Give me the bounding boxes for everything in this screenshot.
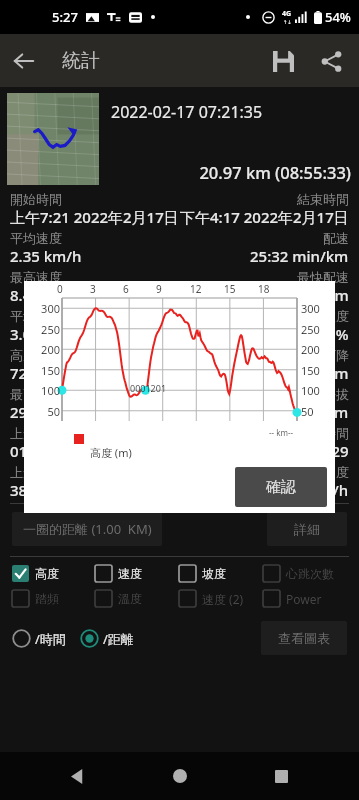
staticText: 6 bbox=[123, 282, 129, 296]
button[interactable]: 溫度 bbox=[95, 590, 179, 607]
staticText: -- km-- bbox=[269, 427, 294, 438]
staticText: 71.00 m bbox=[292, 363, 349, 383]
button[interactable]: 心跳次數 bbox=[263, 565, 347, 582]
button[interactable]: Back bbox=[54, 752, 102, 800]
staticText: Power bbox=[286, 591, 322, 607]
button[interactable]: 踏頻 bbox=[12, 590, 95, 607]
staticText: 下降速度 bbox=[297, 464, 349, 480]
staticText: 最快配速 bbox=[297, 269, 349, 285]
staticText: 配速 bbox=[323, 230, 349, 246]
staticText: 2022-02-17 07:21:35 bbox=[111, 101, 263, 123]
staticText: 100 bbox=[30, 383, 60, 398]
staticText: 300 bbox=[30, 301, 60, 316]
button[interactable]: 查看圖表 bbox=[261, 621, 347, 655]
staticText: 速度 bbox=[118, 566, 142, 581]
staticText: 2.35 km/h bbox=[10, 246, 82, 266]
staticText: 250 bbox=[30, 322, 60, 337]
button[interactable]: Recents bbox=[257, 752, 305, 800]
staticText: 0 bbox=[57, 282, 63, 296]
staticText: 最高速度 bbox=[10, 269, 62, 285]
staticText: 最高海拔 bbox=[10, 386, 62, 402]
button[interactable]: 高度 bbox=[12, 565, 95, 582]
staticText: 3 bbox=[90, 282, 96, 296]
staticText: 高度 (m) bbox=[90, 445, 132, 460]
staticText: 382.09 m/h bbox=[10, 480, 91, 500]
staticText: 結束時間 bbox=[297, 191, 349, 207]
staticText: 20.97 km (08:55:33) bbox=[111, 161, 351, 183]
staticText: 統計 bbox=[62, 49, 100, 73]
staticText: 溫度 bbox=[118, 591, 142, 606]
staticText: 299 m bbox=[10, 402, 54, 422]
staticText: /距離 bbox=[103, 630, 134, 648]
staticText: 4G bbox=[282, 9, 292, 19]
staticText: 150 bbox=[30, 363, 60, 378]
staticText: 上午7:21 2022年2月17日 bbox=[10, 207, 179, 227]
staticText: ↑↓ bbox=[283, 19, 292, 25]
staticText: 確認 bbox=[266, 478, 296, 497]
staticText: 100 bbox=[301, 383, 331, 398]
button[interactable]: /時間 bbox=[12, 629, 66, 648]
staticText: 01:23:29 bbox=[289, 441, 349, 461]
button[interactable]: Home bbox=[156, 752, 204, 800]
staticText: 50 bbox=[30, 404, 60, 419]
staticText: 334.87 m/h bbox=[268, 480, 349, 500]
button[interactable]: 詳細 bbox=[267, 512, 347, 546]
staticText: 查看圖表 bbox=[278, 630, 330, 646]
staticText: 坡度 bbox=[202, 566, 226, 581]
button[interactable]: 速度 (2) bbox=[179, 590, 263, 607]
staticText: 250 bbox=[301, 322, 331, 337]
staticText: 54% bbox=[325, 8, 351, 26]
staticText: 平均海拔 bbox=[10, 308, 62, 324]
staticText: 01:18:29 bbox=[10, 441, 70, 461]
staticText: 平均速度 bbox=[10, 230, 62, 246]
staticText: 8.48 km/h bbox=[10, 285, 82, 305]
button[interactable]: 速度 bbox=[95, 565, 179, 582]
staticText: 踏頻 bbox=[35, 591, 59, 606]
staticText: 高度 bbox=[35, 566, 59, 581]
staticText: 200 bbox=[30, 342, 60, 357]
staticText: /時間 bbox=[35, 630, 66, 648]
button[interactable]: Save bbox=[259, 37, 307, 85]
staticText: 5:27 bbox=[52, 8, 78, 26]
staticText: 12 bbox=[190, 282, 202, 296]
staticText: 300 bbox=[301, 301, 331, 316]
staticText: 72.00 m bbox=[10, 363, 67, 383]
staticText: 18 bbox=[258, 282, 270, 296]
button[interactable]: Power bbox=[263, 590, 347, 607]
staticText: 50 bbox=[301, 404, 331, 419]
button[interactable]: 一圈的距離 (1.00 KM) bbox=[12, 512, 162, 546]
staticText: 一圈的距離 (1.00 KM) bbox=[23, 520, 152, 538]
staticText: 0.09 % bbox=[302, 324, 349, 344]
button[interactable]: /距離 bbox=[80, 629, 134, 648]
staticText: 46 m bbox=[313, 402, 349, 422]
staticText: 3.09 m bbox=[10, 324, 58, 344]
staticText: 7:04 min/km bbox=[259, 285, 349, 305]
staticText: 上升速度 bbox=[10, 464, 62, 480]
staticText: 速度 (2) bbox=[202, 591, 244, 607]
button[interactable]: 坡度 bbox=[179, 565, 263, 582]
staticText: 高度上升 bbox=[10, 347, 62, 363]
staticText: 心跳次數 bbox=[286, 566, 334, 581]
staticText: 平均坡度 bbox=[297, 308, 349, 324]
staticText: 高度下降 bbox=[297, 347, 349, 363]
staticText: 下降時間 bbox=[297, 425, 349, 441]
staticText: 下午4:17 2022年2月17日 bbox=[180, 207, 349, 227]
button[interactable]: Share bbox=[307, 37, 355, 85]
staticText: 開始時間 bbox=[10, 191, 62, 207]
staticText: 25:32 min/km bbox=[250, 246, 349, 266]
staticText: 詳細 bbox=[294, 521, 320, 537]
staticText: 150 bbox=[301, 363, 331, 378]
staticText: 0001201 bbox=[130, 382, 167, 394]
staticText: 9 bbox=[156, 282, 162, 296]
staticText: 200 bbox=[301, 342, 331, 357]
button[interactable]: 確認 bbox=[235, 467, 327, 507]
staticText: 15 bbox=[224, 282, 236, 296]
staticText: 上升時間 bbox=[10, 425, 62, 441]
button[interactable]: Back bbox=[0, 37, 48, 85]
staticText: 最低海拔 bbox=[297, 386, 349, 402]
